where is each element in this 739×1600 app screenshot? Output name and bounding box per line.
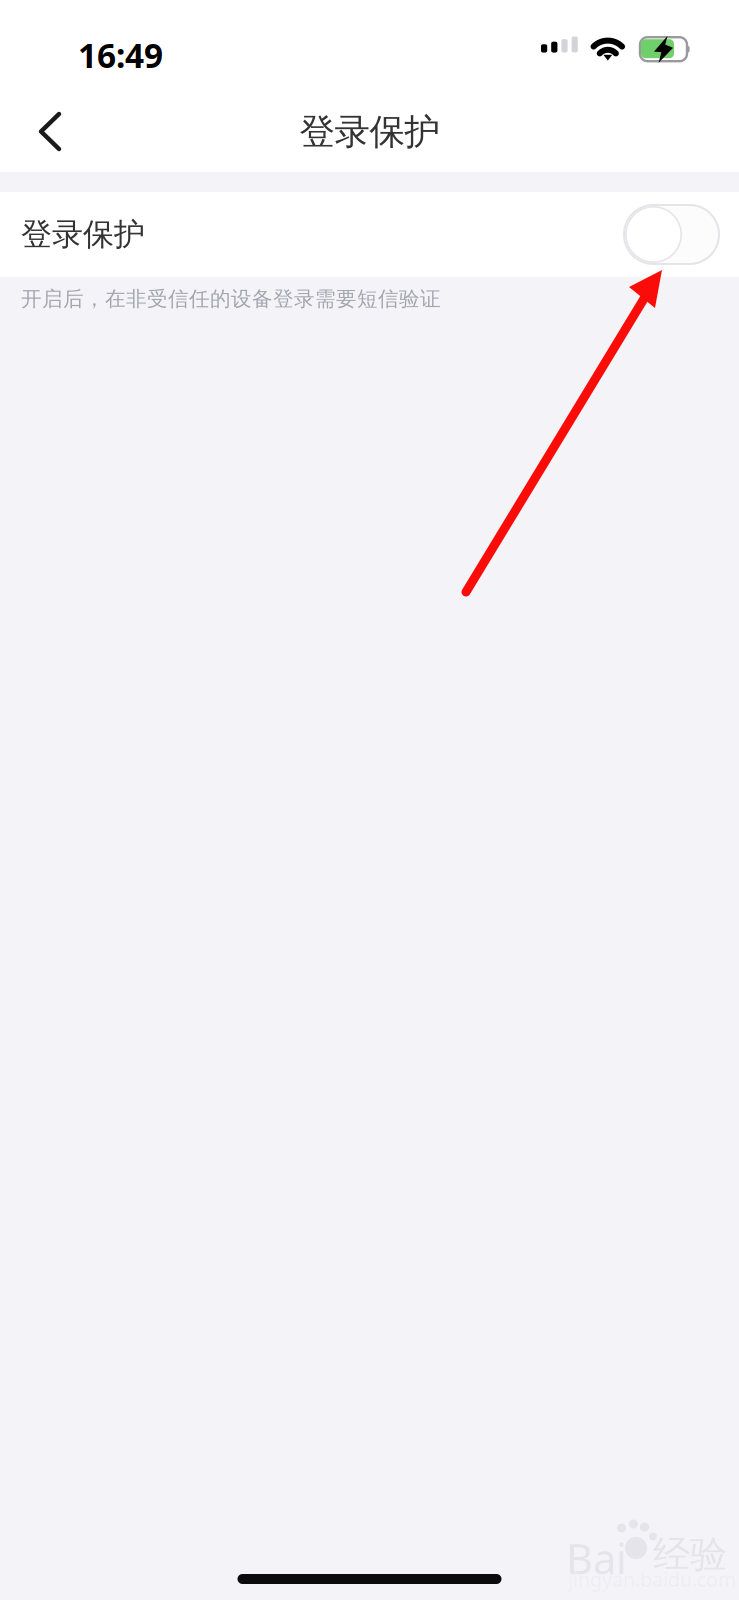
button[interactable]: 登录保护, off: [623, 204, 720, 265]
staticText: jingyan.baidu.com: [568, 1566, 736, 1592]
button[interactable]: Back: [0, 92, 88, 172]
button[interactable]: 登录保护: [0, 192, 739, 277]
staticText: 经验: [653, 1531, 727, 1578]
staticText: 开启后，在非受信任的设备登录需要短信验证: [21, 286, 441, 312]
staticText: 登录保护: [21, 215, 145, 254]
staticText: 16:49: [78, 33, 163, 77]
staticText: Bai: [566, 1530, 627, 1586]
staticText: 登录保护: [299, 110, 439, 154]
